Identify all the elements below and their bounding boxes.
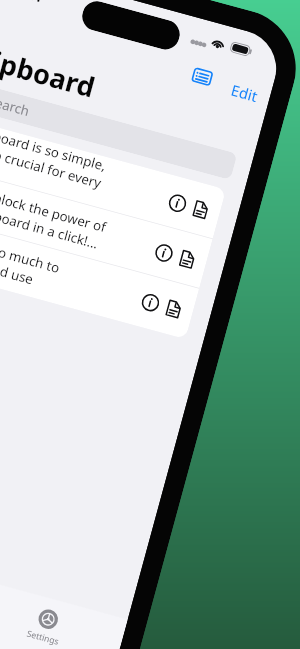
staticText: Search [0, 91, 32, 120]
button[interactable]: Search [0, 81, 238, 180]
button[interactable]: Copy [191, 199, 210, 220]
button[interactable]: Clipboard is so simple, yet so crucial f… [0, 117, 226, 239]
button[interactable]: Edit [227, 78, 262, 109]
button[interactable]: Card view [191, 67, 214, 86]
staticText: Let's unlock the power of the clipboard … [0, 178, 111, 254]
button[interactable]: Let's unlock the power of the clipboard … [0, 167, 213, 289]
button[interactable]: There is so much to explore and use [0, 217, 199, 338]
button[interactable]: Settings [4, 600, 87, 649]
button[interactable]: Copy [178, 249, 197, 270]
button[interactable]: Info [166, 192, 188, 214]
button[interactable]: Info [139, 292, 161, 314]
staticText: Clipboard is so simple, yet so crucial f… [0, 121, 127, 212]
staticText: There is so much to explore and use [0, 227, 98, 304]
staticText: Clipboard [0, 36, 99, 106]
staticText: Edit [229, 80, 260, 107]
staticText: 9:41 [14, 0, 45, 6]
button[interactable]: Info [153, 242, 175, 264]
staticText: Settings [26, 627, 60, 647]
button[interactable]: Copy [164, 298, 183, 320]
